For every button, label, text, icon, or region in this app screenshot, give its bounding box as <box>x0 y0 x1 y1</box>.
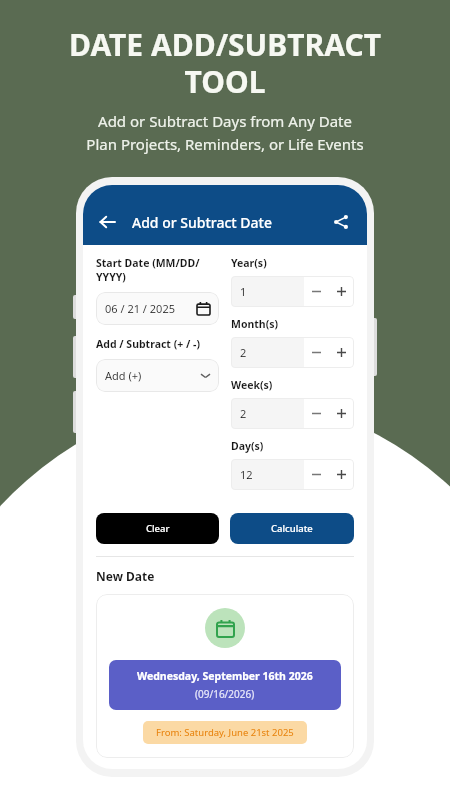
button[interactable]: 2 <box>231 337 304 368</box>
staticText: 1 <box>240 284 247 299</box>
staticText: 12 <box>240 467 253 482</box>
staticText: Day(s) <box>231 439 264 453</box>
staticText: Add or Subtract Days from Any Date Plan … <box>86 111 364 154</box>
button[interactable]: Calculate <box>230 513 354 544</box>
button[interactable]: Decrease Year(s) <box>304 276 329 307</box>
staticText: Year(s) <box>231 256 267 270</box>
button[interactable]: 12 <box>231 459 304 490</box>
button[interactable]: Add (+) <box>96 359 219 392</box>
staticText: 2 <box>240 345 247 360</box>
staticText: Week(s) <box>231 378 273 392</box>
staticText: Clear <box>146 522 170 535</box>
staticText: Add (+) <box>105 368 142 383</box>
button[interactable]: Increase Year(s) <box>329 276 354 307</box>
staticText: New Date <box>96 568 155 584</box>
button[interactable]: Clear <box>96 513 219 544</box>
staticText: From: Saturday, June 21st 2025 <box>156 726 294 739</box>
button[interactable]: Share <box>327 208 355 236</box>
staticText: (09/16/2026) <box>195 687 255 701</box>
button[interactable]: 2 <box>231 398 304 429</box>
staticText: 2 <box>240 406 247 421</box>
button[interactable]: Back <box>93 208 121 236</box>
staticText: Wednesday, September 16th 2026 <box>137 669 313 683</box>
button[interactable]: Increase Week(s) <box>329 398 354 429</box>
button[interactable]: 06 / 21 / 2025 <box>96 292 219 325</box>
staticText: Add or Subtract Date <box>132 213 272 232</box>
staticText: Calculate <box>271 522 313 535</box>
button[interactable]: 1 <box>231 276 304 307</box>
button[interactable]: Decrease Day(s) <box>304 459 329 490</box>
staticText: Add / Subtract (+ / -) <box>96 337 200 351</box>
staticText: 06 / 21 / 2025 <box>105 301 175 316</box>
staticText: Start Date (MM/DD/ YYYY) <box>96 256 200 284</box>
button[interactable]: Increase Day(s) <box>329 459 354 490</box>
button[interactable]: Decrease Month(s) <box>304 337 329 368</box>
staticText: Month(s) <box>231 317 279 331</box>
button[interactable]: Decrease Week(s) <box>304 398 329 429</box>
staticText: DATE ADD/SUBTRACT TOOL <box>26 24 424 102</box>
button[interactable]: Increase Month(s) <box>329 337 354 368</box>
